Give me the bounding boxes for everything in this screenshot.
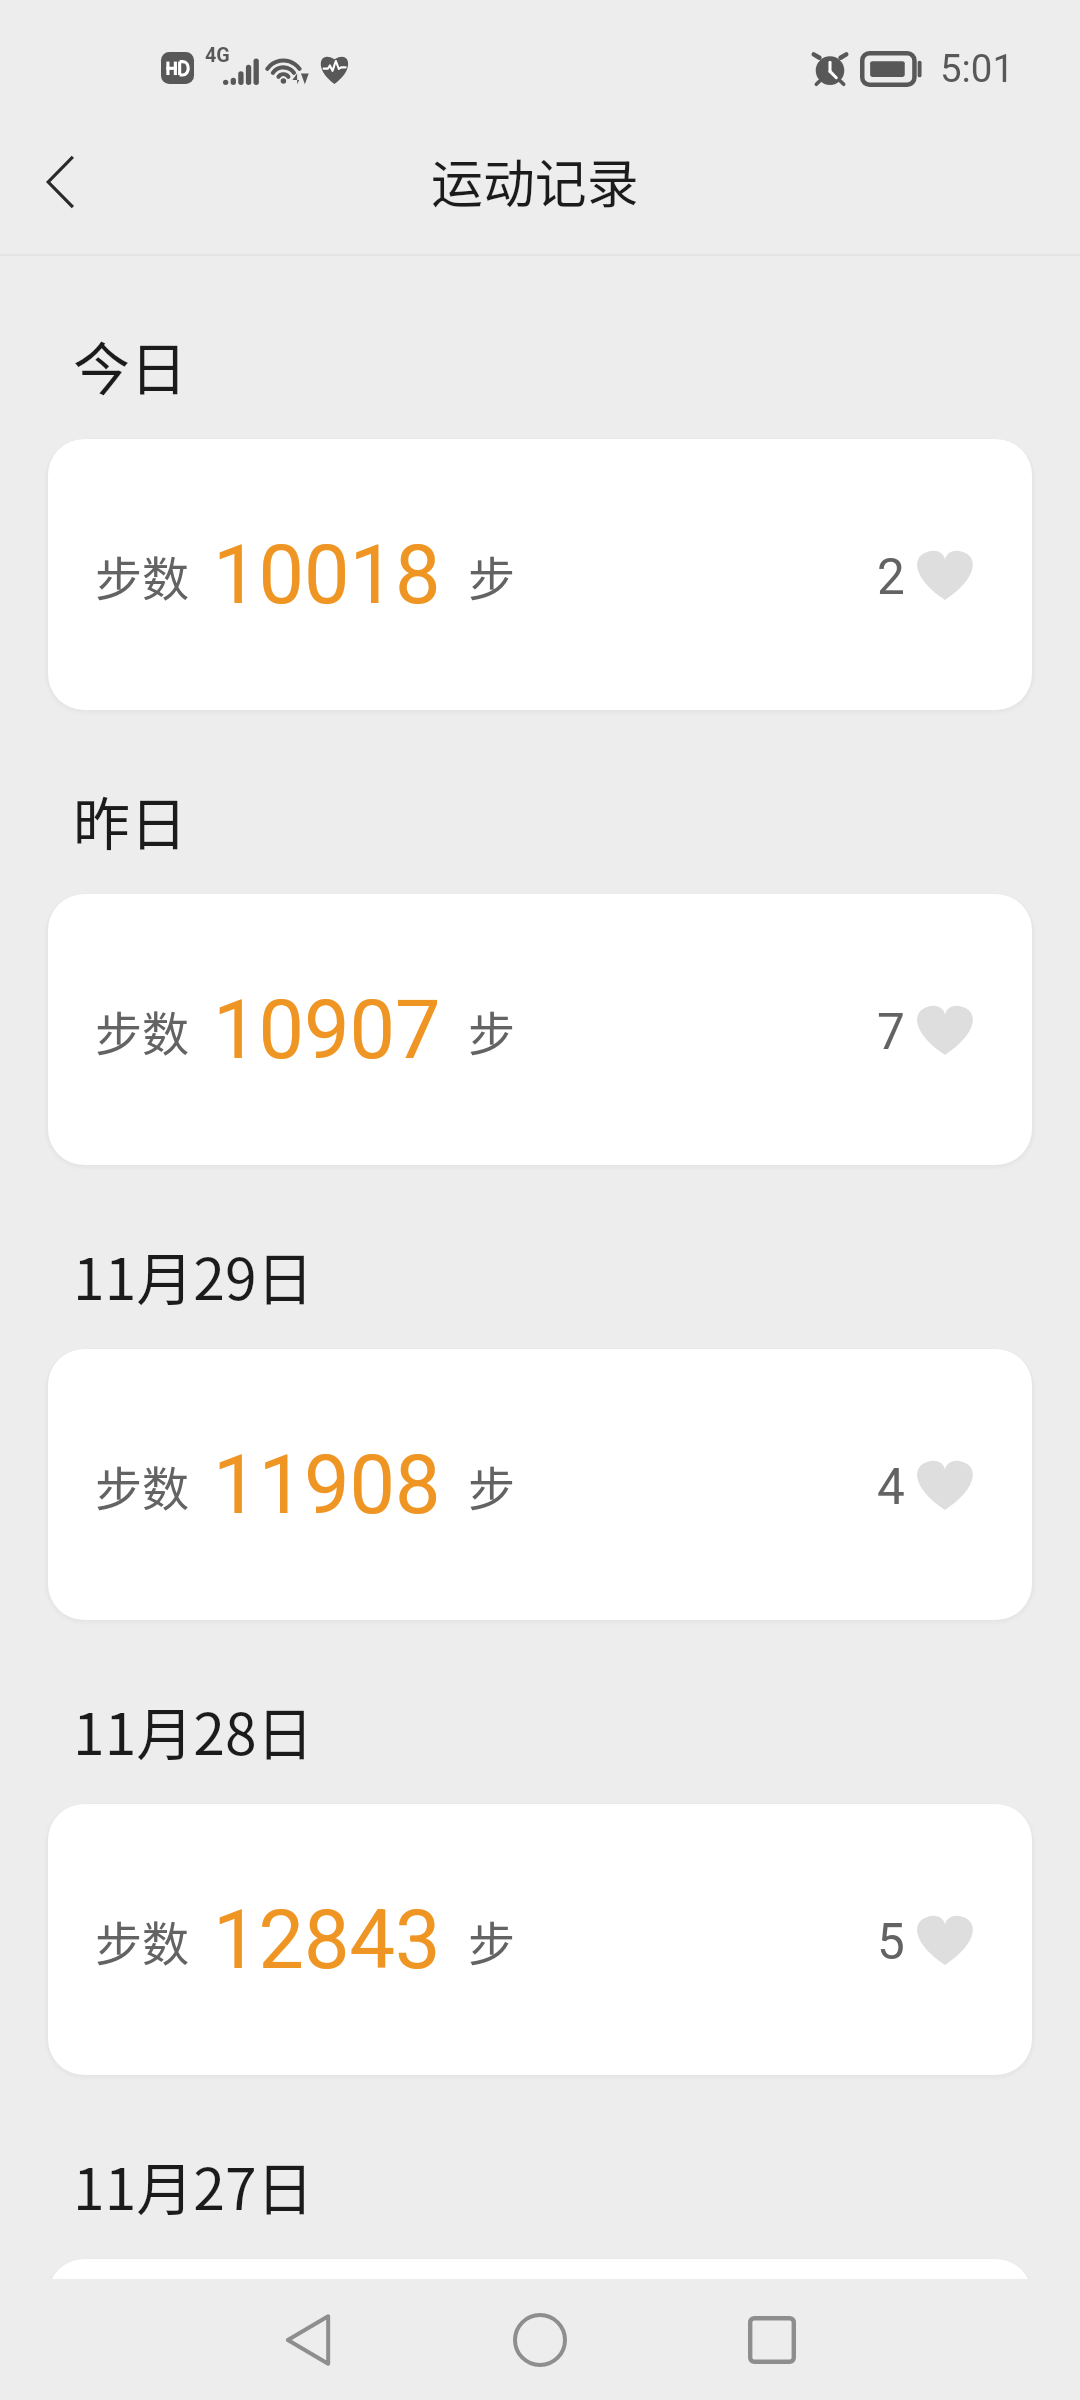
staticText: 今日 bbox=[73, 324, 187, 407]
button[interactable]: Back bbox=[230, 2279, 386, 2400]
staticText: 11月29日 bbox=[73, 1234, 314, 1317]
button[interactable]: Back bbox=[3, 136, 117, 228]
button[interactable]: 步数 bbox=[48, 894, 1032, 1165]
staticText: 7 bbox=[877, 1003, 905, 1061]
button[interactable]: Home bbox=[462, 2279, 618, 2400]
staticText: 运动记录 bbox=[431, 143, 639, 218]
staticText: 5 bbox=[877, 1913, 905, 1971]
staticText: 5:01 bbox=[940, 46, 1015, 91]
staticText: 步 bbox=[468, 1451, 516, 1519]
staticText: 昨日 bbox=[73, 779, 187, 862]
staticText: 11月28日 bbox=[73, 1689, 314, 1772]
staticText: 步 bbox=[468, 1906, 516, 1974]
button[interactable]: 步数 bbox=[48, 1804, 1032, 2075]
staticText: 9872 bbox=[213, 2283, 396, 2378]
staticText: 11月27日 bbox=[73, 2144, 314, 2227]
staticText: 10907 bbox=[213, 983, 441, 1078]
staticText: 4G bbox=[205, 44, 230, 67]
button[interactable]: Recents bbox=[694, 2279, 850, 2400]
staticText: 步数 bbox=[95, 996, 190, 1064]
button[interactable]: 步数 bbox=[48, 439, 1032, 710]
staticText: 步数 bbox=[95, 541, 190, 609]
button[interactable]: 步数 bbox=[48, 2259, 1032, 2400]
staticText: 2 bbox=[877, 548, 905, 606]
button[interactable]: 步数 bbox=[48, 1349, 1032, 1620]
staticText: 12843 bbox=[213, 1893, 441, 1988]
staticText: 10018 bbox=[213, 528, 441, 623]
staticText: 11908 bbox=[213, 1438, 441, 1533]
staticText: 步数 bbox=[95, 1451, 190, 1519]
staticText: 步 bbox=[468, 996, 516, 1064]
staticText: 4 bbox=[877, 1458, 905, 1516]
staticText: 步数 bbox=[95, 1906, 190, 1974]
staticText: 步 bbox=[468, 541, 516, 609]
